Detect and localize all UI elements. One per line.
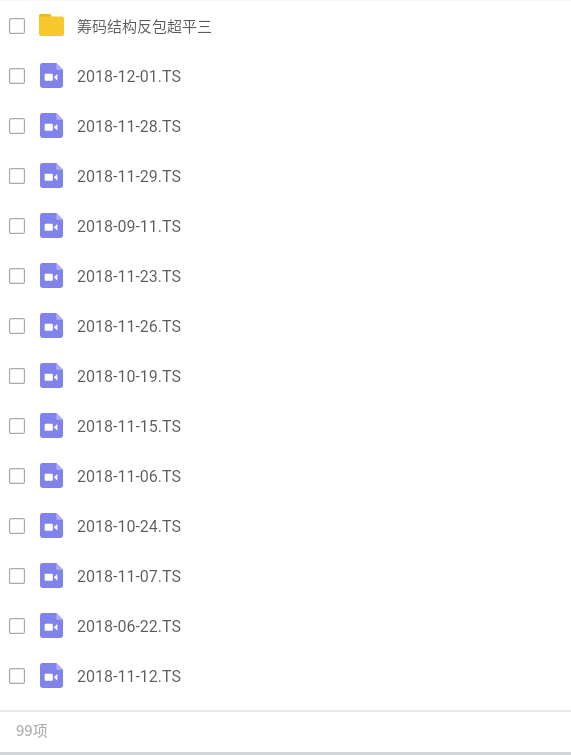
button[interactable]: Select 2018-11-28.TS (0, 101, 571, 151)
staticText: 2018-11-06.TS (77, 467, 181, 486)
staticText: 2018-11-07.TS (77, 567, 181, 586)
button[interactable]: Select 2018-11-07.TS (0, 551, 571, 601)
staticText: 2018-11-15.TS (77, 417, 181, 436)
staticText: 2018-11-12.TS (77, 667, 181, 686)
button[interactable]: Select 2018-09-11.TS (9, 218, 25, 234)
button[interactable]: Select 2018-11-29.TS (0, 151, 571, 201)
button[interactable]: Select 筹码结构反包超平三 (0, 1, 571, 51)
button[interactable]: Select 2018-12-01.TS (9, 68, 25, 84)
staticText: 筹码结构反包超平三 (77, 15, 213, 37)
button[interactable]: Select 2018-11-23.TS (9, 268, 25, 284)
button[interactable]: Select 2018-12-01.TS (0, 51, 571, 101)
button[interactable]: Select 2018-11-15.TS (0, 401, 571, 451)
button[interactable]: Select 2018-11-07.TS (9, 568, 25, 584)
staticText: 2018-10-24.TS (77, 517, 181, 536)
staticText: 2018-11-23.TS (77, 267, 181, 286)
button[interactable]: Select 2018-11-06.TS (9, 468, 25, 484)
button[interactable]: Select 2018-10-19.TS (9, 368, 25, 384)
button[interactable]: Select 2018-11-06.TS (0, 451, 571, 501)
button[interactable]: Select 筹码结构反包超平三 (9, 18, 25, 34)
button[interactable]: Select 2018-11-12.TS (0, 651, 571, 701)
staticText: 2018-12-01.TS (77, 67, 181, 86)
button[interactable]: Select 2018-11-26.TS (0, 301, 571, 351)
staticText: 2018-11-26.TS (77, 317, 181, 336)
staticText: 2018-11-29.TS (77, 167, 181, 186)
button[interactable]: Select 2018-11-15.TS (9, 418, 25, 434)
button[interactable]: Select 2018-11-12.TS (9, 668, 25, 684)
button[interactable]: Select 2018-10-24.TS (9, 518, 25, 534)
button[interactable]: Select 2018-09-11.TS (0, 201, 571, 251)
staticText: 2018-10-19.TS (77, 367, 181, 386)
staticText: 2018-06-22.TS (77, 617, 181, 636)
button[interactable]: Select 2018-11-23.TS (0, 251, 571, 301)
button[interactable]: Select 2018-06-22.TS (0, 601, 571, 651)
button[interactable]: Select 2018-11-29.TS (9, 168, 25, 184)
button[interactable]: Select 2018-06-22.TS (9, 618, 25, 634)
staticText: 2018-09-11.TS (77, 217, 181, 236)
staticText: 99项 (16, 719, 48, 741)
button[interactable]: Select 2018-11-28.TS (9, 118, 25, 134)
staticText: 2018-11-28.TS (77, 117, 181, 136)
button[interactable]: Select 2018-11-26.TS (9, 318, 25, 334)
button[interactable]: Select 2018-10-24.TS (0, 501, 571, 551)
button[interactable]: Select 2018-10-19.TS (0, 351, 571, 401)
